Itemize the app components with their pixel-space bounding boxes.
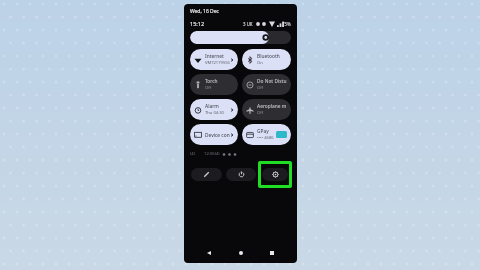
button[interactable]: Device con [190,124,238,145]
staticText: (4) [190,151,195,157]
staticText: On [257,60,263,66]
staticText: Off [257,110,264,116]
button[interactable]: Home [234,246,248,260]
staticText: Aeroplane m [257,103,287,110]
staticText: Alarm [205,103,219,110]
staticText: 3 UK [243,21,253,27]
button[interactable]: Settings [262,168,288,181]
staticText: Off [257,85,264,91]
button[interactable]: Bluetooth [242,49,291,70]
button[interactable]: Torch [190,74,238,95]
staticText: Wed, 16 Dec [190,8,219,15]
staticText: VM72179556 [205,60,230,66]
button[interactable]: Alarm [190,99,238,120]
button[interactable]: Aeroplane m [242,99,291,120]
button[interactable]: Edit [191,168,222,181]
button[interactable]: Brightness [190,31,291,44]
staticText: 12:06(4) [204,151,220,157]
staticText: Internet [205,53,224,60]
staticText: GPay [257,128,269,135]
button[interactable]: Do Not Distu [242,74,291,95]
staticText: Torch [205,78,218,85]
button[interactable]: Power [226,168,256,181]
staticText: •••• 4686 [257,135,274,141]
staticText: 75% [282,21,291,27]
staticText: Thu 04:30 [205,110,224,116]
staticText: 15:12 [190,20,205,27]
button[interactable]: Back [202,246,216,260]
button[interactable]: GPay [242,124,291,145]
button[interactable]: Internet [190,49,238,70]
staticText: Bluetooth [257,53,280,60]
staticText: Off [205,85,212,91]
button[interactable]: Recents [265,246,279,260]
staticText: Do Not Distu [257,78,287,85]
staticText: Device con [205,132,230,139]
